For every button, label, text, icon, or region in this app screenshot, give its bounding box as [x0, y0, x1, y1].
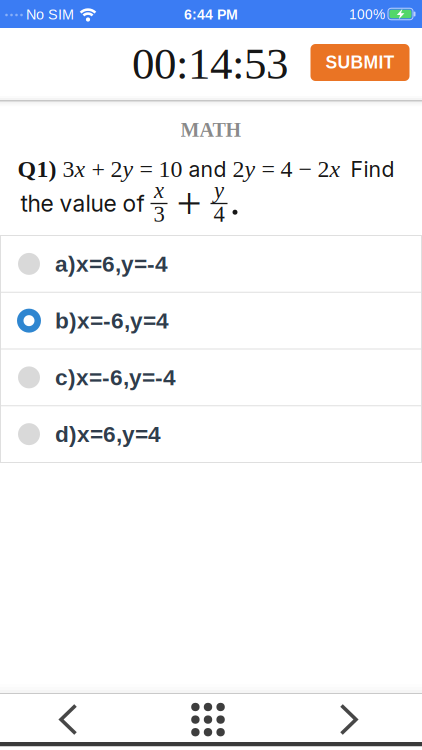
staticText: 4 — [213, 202, 224, 227]
staticText: d)x=6,y=4 — [55, 421, 161, 447]
staticText: + — [167, 179, 210, 228]
staticText: MATH — [180, 119, 241, 141]
staticText: b)x=-6,y=4 — [55, 308, 169, 333]
staticText: x — [154, 178, 164, 203]
staticText: No SIM — [26, 6, 74, 23]
staticText: 100% — [349, 7, 385, 22]
staticText: the value of — [20, 190, 150, 217]
staticText: y — [214, 178, 224, 203]
staticText: 00:14:53 — [132, 39, 288, 88]
staticText: a)x=6,y=-4 — [55, 251, 168, 276]
staticText: 3 — [153, 202, 164, 227]
staticText: SUBMIT — [325, 53, 394, 72]
staticText: 6:44 PM — [184, 7, 238, 22]
staticText: c)x=-6,y=-4 — [55, 365, 176, 390]
staticText: Q1) 3x + 2y = 10 and 2y = 4 − 2x Find — [17, 156, 394, 182]
